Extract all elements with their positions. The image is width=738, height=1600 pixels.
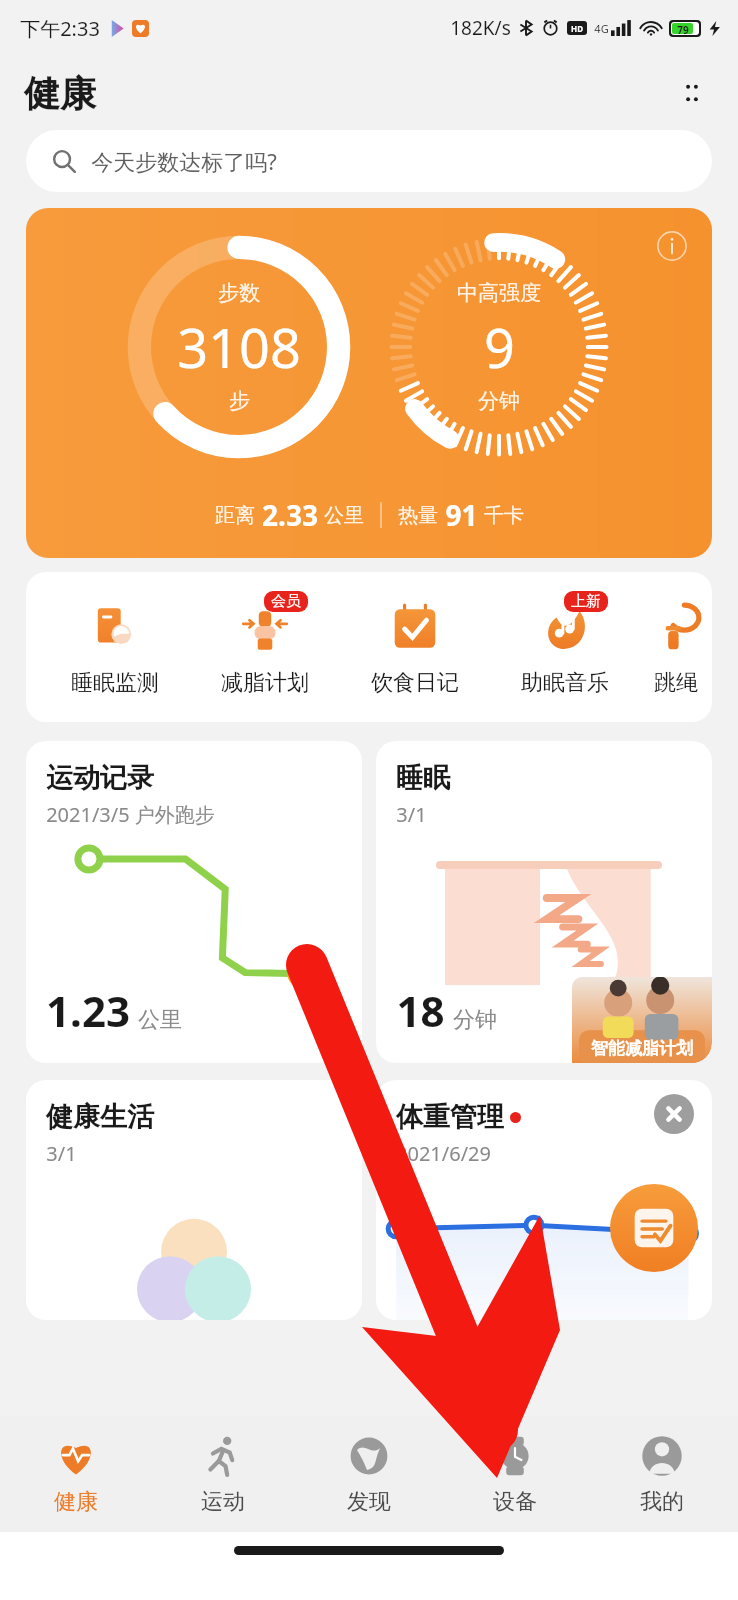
staticText: 运动	[201, 1488, 245, 1516]
staticText: 会员	[271, 592, 301, 611]
staticText: 分钟	[478, 388, 520, 414]
button[interactable]: 睡眠监测	[40, 597, 190, 697]
staticText: 饮食日记	[371, 669, 459, 697]
button[interactable]: 我的	[592, 1432, 732, 1516]
button[interactable]: 会员	[190, 597, 340, 697]
staticText: 上新	[571, 592, 601, 611]
staticText: 我的	[640, 1488, 684, 1516]
button[interactable]: Info	[652, 226, 692, 266]
staticText: 79	[677, 23, 689, 34]
staticText: 中高强度	[457, 280, 541, 306]
button[interactable]: 发现	[299, 1432, 439, 1516]
staticText: HD	[571, 23, 583, 34]
staticText: 体重管理	[396, 1100, 504, 1134]
button[interactable]: 跳绳	[640, 597, 712, 697]
button[interactable]: 健康	[6, 1432, 146, 1516]
staticText: 下午2:33	[20, 15, 100, 42]
staticText: 热量	[398, 503, 438, 528]
staticText: 3/1	[396, 801, 427, 828]
staticText: 2021/3/5 户外跑步	[46, 801, 215, 828]
button[interactable]: 运动记录	[26, 741, 362, 1063]
button[interactable]: 智能减脂计划	[572, 977, 712, 1063]
button[interactable]: 健康生活	[26, 1080, 362, 1320]
button[interactable]: Record weight	[610, 1184, 698, 1272]
staticText: 1.23	[46, 982, 130, 1039]
staticText: 运动记录	[46, 761, 154, 795]
staticText: 3108	[177, 310, 301, 384]
staticText: 分钟	[453, 1006, 497, 1034]
staticText: 2021/6/29	[396, 1140, 491, 1167]
staticText: 91	[445, 496, 478, 534]
button[interactable]: 体重管理	[376, 1080, 712, 1320]
button[interactable]: More options	[670, 71, 714, 115]
staticText: 9	[484, 310, 515, 384]
button[interactable]: 上新	[490, 597, 640, 697]
staticText: 智能减脂计划	[591, 1038, 693, 1059]
staticText: 减脂计划	[221, 669, 309, 697]
button[interactable]: 睡眠	[376, 741, 712, 1063]
staticText: 健康	[54, 1488, 98, 1516]
button[interactable]: 饮食日记	[340, 597, 490, 697]
staticText: 今天步数达标了吗?	[91, 146, 277, 176]
staticText: 2.33	[262, 496, 318, 534]
staticText: 步	[229, 388, 250, 414]
staticText: 公里	[324, 503, 364, 528]
staticText: 182K/s	[450, 15, 511, 41]
staticText: 跳绳	[654, 669, 698, 697]
button[interactable]: 今天步数达标了吗?	[26, 130, 712, 192]
staticText: 3/1	[46, 1140, 77, 1167]
staticText: 助眠音乐	[521, 669, 609, 697]
staticText: 健康	[24, 71, 96, 116]
button[interactable]: 设备	[445, 1432, 585, 1516]
button[interactable]: Close	[654, 1094, 694, 1134]
staticText: 设备	[493, 1488, 537, 1516]
button[interactable]: 运动	[153, 1432, 293, 1516]
staticText: 距离	[215, 503, 255, 528]
staticText: 睡眠	[396, 761, 450, 795]
staticText: 睡眠监测	[71, 669, 159, 697]
staticText: 健康生活	[46, 1100, 154, 1134]
staticText: 发现	[347, 1488, 391, 1516]
staticText: 18	[396, 982, 445, 1039]
staticText: 公里	[138, 1006, 182, 1034]
staticText: 步数	[218, 280, 260, 306]
staticText: 千卡	[484, 503, 524, 528]
staticText: 4G	[594, 21, 609, 36]
button[interactable]: Info	[26, 208, 712, 558]
